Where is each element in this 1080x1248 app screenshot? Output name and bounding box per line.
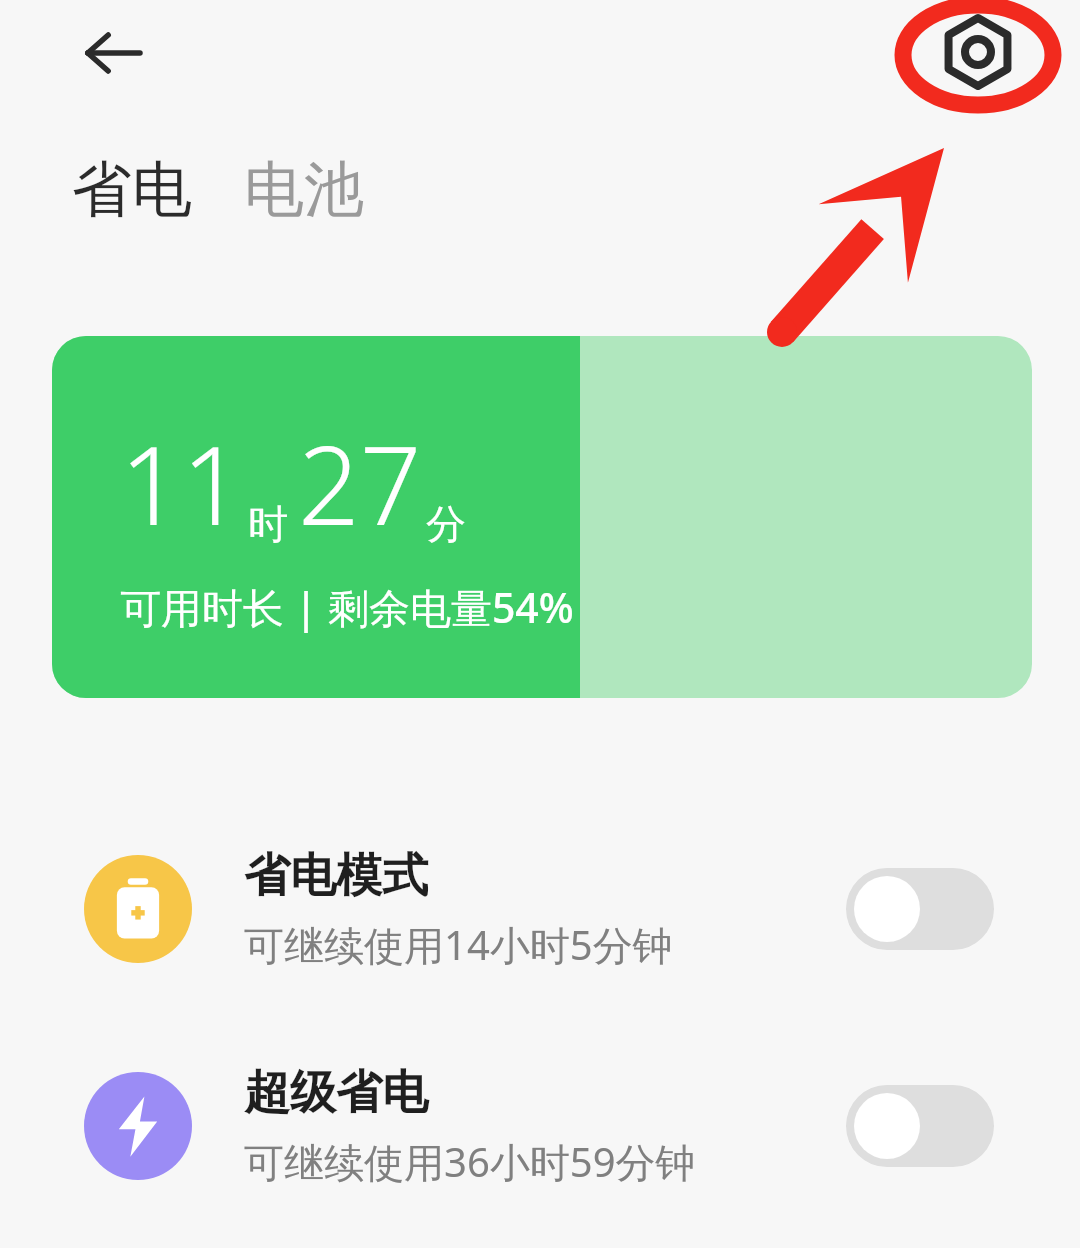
staticText: 11	[120, 410, 244, 557]
staticText: 27	[298, 410, 422, 557]
button[interactable]: 超级省电	[0, 1056, 1080, 1196]
staticText: 省电模式	[244, 847, 428, 905]
staticText: 可继续使用14小时5分钟	[244, 917, 673, 972]
staticText: 电池	[244, 152, 364, 228]
button[interactable]: 电池	[244, 152, 364, 228]
button[interactable]: 省电模式 toggle	[846, 868, 994, 950]
staticText: 分	[426, 499, 466, 549]
button[interactable]: Settings	[918, 0, 1038, 104]
staticText: 可继续使用36小时59分钟	[244, 1134, 696, 1189]
button[interactable]: 省电	[72, 152, 192, 228]
staticText: 时	[248, 499, 288, 549]
staticText: 省电	[72, 152, 192, 228]
staticText: 超级省电	[244, 1064, 428, 1122]
button[interactable]: 11	[52, 336, 1032, 698]
staticText: 可用时长 | 剩余电量54%	[120, 579, 574, 635]
button[interactable]: Back	[68, 8, 158, 98]
button[interactable]: 超级省电 toggle	[846, 1085, 994, 1167]
button[interactable]: 省电模式	[0, 839, 1080, 979]
